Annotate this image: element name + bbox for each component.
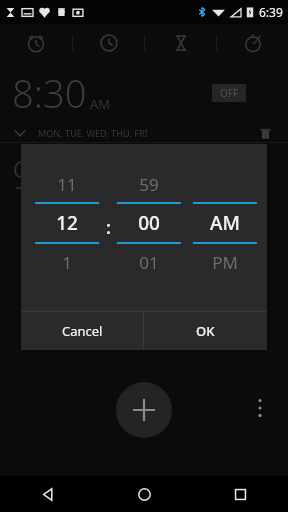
button[interactable]: Home (96, 476, 192, 512)
button[interactable]: PM (193, 244, 257, 280)
button[interactable]: OFF (212, 84, 246, 102)
staticText: AM (90, 95, 111, 113)
button[interactable]: AM PM (193, 204, 257, 242)
staticText: Cancel (62, 322, 103, 340)
staticText: OFF (220, 86, 239, 100)
button[interactable]: More options (248, 390, 272, 426)
staticText: PM (212, 251, 238, 274)
staticText: OK (196, 322, 215, 340)
staticText: 01 (139, 251, 159, 274)
button[interactable]: Recent apps (192, 476, 288, 512)
button[interactable]: 59 (117, 166, 181, 202)
button[interactable]: Cancel (21, 312, 143, 350)
button[interactable]: Timer (145, 24, 216, 62)
staticText: 12 (56, 210, 78, 236)
button[interactable]: Stopwatch (217, 24, 288, 62)
button[interactable]: Hour (35, 204, 99, 242)
button[interactable]: OK (144, 312, 267, 350)
button[interactable]: 1 (35, 244, 99, 280)
button[interactable]: Clock (73, 24, 144, 62)
staticText: 1 (62, 251, 72, 274)
staticText: 59 (139, 173, 159, 196)
button[interactable]: 01 (117, 244, 181, 280)
staticText: 11 (57, 173, 77, 196)
button[interactable]: Back (0, 476, 96, 512)
button[interactable]: Add alarm (116, 382, 172, 438)
staticText: 00 (138, 210, 160, 236)
button[interactable]: Alarm (0, 24, 72, 62)
button[interactable]: Minute (117, 204, 181, 242)
button[interactable]: 8:30 (0, 62, 288, 124)
button[interactable]: 11 (35, 166, 99, 202)
staticText: : (106, 215, 111, 240)
staticText: 6:39 (259, 4, 283, 20)
staticText: MON, TUE, WED, THU, FRI (38, 127, 148, 139)
staticText: 8:30 (12, 67, 87, 119)
staticText: 9 (12, 148, 34, 200)
staticText: AM (210, 210, 240, 236)
